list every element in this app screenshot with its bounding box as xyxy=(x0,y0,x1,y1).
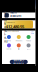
staticText: Main account xyxy=(10,11,21,18)
staticText: Bills xyxy=(18,48,20,50)
button[interactable]: Top up xyxy=(24,34,33,42)
button[interactable]: Cards xyxy=(4,43,13,50)
staticText: Alex Morgan xyxy=(10,5,16,15)
button[interactable]: Send xyxy=(4,34,13,42)
button[interactable]: Bills xyxy=(14,43,23,50)
staticText: Top up xyxy=(26,40,31,42)
button[interactable]: Request xyxy=(14,34,23,42)
staticText: Transfer money xyxy=(13,58,24,65)
staticText: Quick actions xyxy=(4,11,7,54)
button[interactable]: Main account xyxy=(2,12,35,18)
staticText: Send xyxy=(7,40,11,42)
button[interactable]: Total balance xyxy=(2,20,35,28)
staticText: More xyxy=(27,48,31,50)
staticText: Total balance xyxy=(6,22,15,23)
button[interactable]: Transfer money xyxy=(10,60,28,64)
staticText: + $320.10 this month xyxy=(6,30,19,32)
staticText: $12,480.55 xyxy=(6,24,24,29)
staticText: See all xyxy=(31,31,33,34)
staticText: Cards xyxy=(6,48,11,50)
staticText: Request xyxy=(16,40,22,42)
button[interactable]: More xyxy=(24,43,33,50)
staticText: •••• 4821 xyxy=(10,18,18,20)
